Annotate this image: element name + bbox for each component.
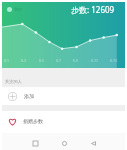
staticText: 8.1 — [4, 58, 9, 63]
staticText: 8.3 — [21, 58, 26, 63]
button[interactable]: Back — [84, 135, 102, 150]
staticText: 8.9 — [73, 58, 78, 63]
staticText: 添加 — [24, 93, 34, 99]
button[interactable]: Profile — [7, 7, 12, 12]
staticText: 捐赠步数 — [23, 118, 43, 124]
staticText: 8.11 — [91, 58, 98, 63]
button[interactable]: 捐赠步数 — [2, 110, 125, 132]
staticText: 8.7 — [56, 58, 61, 63]
staticText: 步数: 12609 — [71, 4, 115, 15]
staticText: 我的 — [14, 7, 22, 12]
button[interactable]: Home — [55, 135, 73, 150]
button[interactable]: 添加 — [2, 87, 125, 105]
staticText: 关注的人 — [5, 79, 22, 84]
button[interactable]: Recents — [26, 135, 44, 150]
staticText: 8.13 — [110, 58, 117, 63]
staticText: 8.5 — [39, 58, 44, 63]
